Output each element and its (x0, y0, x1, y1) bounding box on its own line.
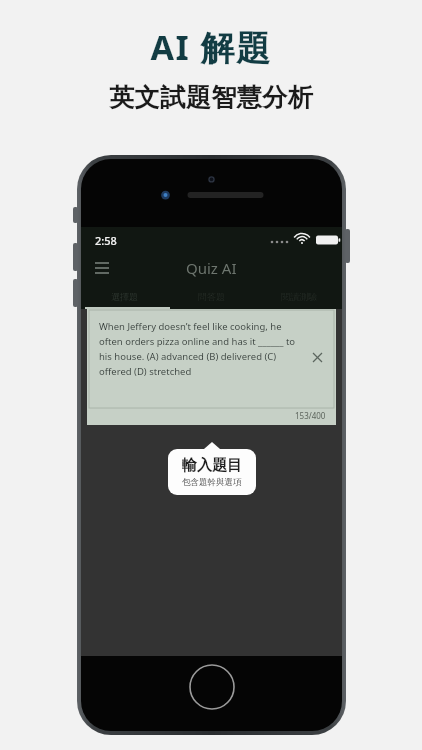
staticText: 153/400 (295, 410, 326, 421)
staticText: 輸入題目 (182, 456, 242, 475)
staticText: When Jeffery doesn’t feel like cooking, … (99, 320, 304, 378)
staticText: AI 解題 (150, 24, 272, 70)
staticText: 問答題 (198, 291, 225, 302)
button[interactable]: 選擇題 (81, 283, 168, 309)
staticText: 英文試題智慧分析 (109, 82, 313, 113)
button[interactable]: 輸入題目 (168, 449, 256, 495)
staticText: 2:58 (95, 233, 117, 248)
staticText: 選擇題 (111, 291, 138, 302)
staticText: 閱讀測驗 (281, 291, 317, 302)
button[interactable]: Menu (89, 255, 115, 281)
staticText: 包含題幹與選項 (182, 477, 242, 488)
other: Home (188, 663, 236, 711)
staticText: Quiz AI (186, 258, 237, 278)
button[interactable]: 問答題 (168, 283, 255, 309)
button[interactable]: Clear (308, 348, 326, 366)
